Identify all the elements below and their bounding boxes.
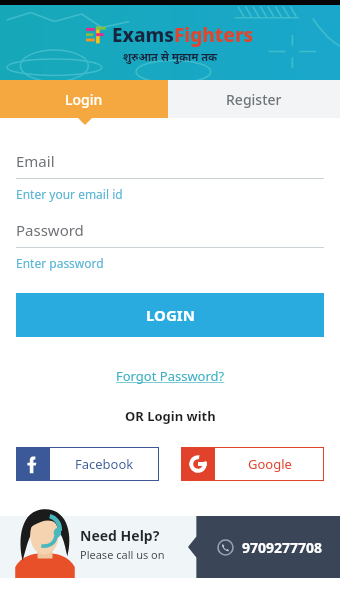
button[interactable]: Facebook <box>16 447 159 481</box>
staticText: Email <box>16 151 55 171</box>
other: Call <box>217 539 234 556</box>
button[interactable]: Google <box>181 447 324 481</box>
staticText: Login <box>65 90 103 109</box>
button[interactable]: Register <box>168 80 340 118</box>
staticText: Facebook <box>75 455 134 473</box>
staticText: OR Login with <box>125 407 216 425</box>
staticText: LOGIN <box>146 305 195 325</box>
staticText: Register <box>226 90 282 109</box>
staticText: Please call us on <box>80 547 165 562</box>
button[interactable]: Forgot Password? <box>112 363 229 389</box>
staticText: Enter your email id <box>16 186 123 202</box>
staticText: Google <box>248 455 292 473</box>
staticText: Enter password <box>16 255 104 271</box>
staticText: Fighters <box>174 22 254 48</box>
staticText: Exams <box>112 22 174 48</box>
staticText: 9709277708 <box>242 538 323 557</box>
staticText: Need Help? <box>80 526 160 545</box>
button[interactable]: Call <box>188 516 340 578</box>
button[interactable]: LOGIN <box>16 293 324 337</box>
staticText: शुरुआत से मुक़ाम तक <box>123 49 218 64</box>
staticText: Password <box>16 220 84 240</box>
button[interactable]: Login <box>0 80 168 118</box>
